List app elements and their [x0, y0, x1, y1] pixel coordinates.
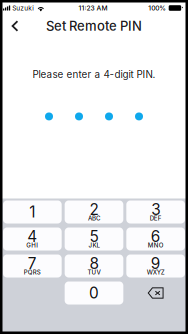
staticText: 7: [28, 254, 37, 273]
staticText: 5: [89, 227, 98, 246]
button[interactable]: 7: [3, 254, 62, 277]
staticText: TUV: [87, 269, 100, 276]
staticText: Set Remote PIN: [46, 18, 142, 34]
staticText: 9: [151, 254, 161, 273]
staticText: WXYZ: [147, 269, 165, 276]
button[interactable]: 8: [65, 254, 123, 277]
staticText: GHI: [26, 242, 38, 249]
button[interactable]: Back: [3, 14, 27, 38]
staticText: 11:23 AM: [78, 4, 107, 12]
staticText: 100%: [148, 4, 166, 12]
button[interactable]: 9: [126, 254, 185, 277]
staticText: PQRS: [24, 269, 41, 276]
button[interactable]: 1: [3, 200, 62, 223]
button[interactable]: 6: [126, 227, 185, 250]
staticText: MNO: [148, 242, 164, 249]
staticText: 4: [27, 227, 37, 246]
button[interactable]: 2: [65, 200, 123, 223]
staticText: 1: [29, 203, 35, 221]
staticText: 0: [89, 284, 99, 302]
staticText: DEF: [150, 215, 162, 222]
staticText: JKL: [88, 242, 99, 249]
staticText: 8: [89, 254, 98, 273]
staticText: 3: [151, 200, 160, 219]
button[interactable]: 4: [3, 227, 62, 250]
staticText: 6: [151, 227, 161, 246]
staticText: ABC: [88, 215, 100, 222]
button[interactable]: 0: [65, 281, 123, 304]
staticText: Suzuki: [12, 4, 34, 12]
staticText: Please enter a 4-digit PIN.: [32, 68, 155, 80]
staticText: 2: [89, 200, 98, 219]
button[interactable]: 3: [126, 200, 185, 223]
button[interactable]: Delete: [126, 281, 185, 304]
button[interactable]: 5: [65, 227, 123, 250]
